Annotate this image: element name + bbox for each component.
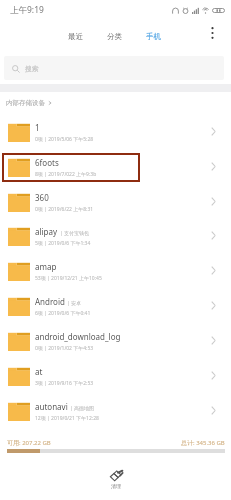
button[interactable]: More options: [203, 23, 222, 42]
staticText: alipay: [35, 226, 58, 237]
staticText: 最近: [68, 32, 83, 41]
staticText: autonavi: [35, 401, 68, 412]
staticText: 6foots: [35, 157, 59, 168]
staticText: at: [35, 366, 43, 377]
staticText: | 安卓: [67, 300, 82, 307]
staticText: 1: [35, 122, 40, 133]
staticText: 搜索: [25, 64, 39, 73]
button[interactable]: 最近: [68, 32, 83, 41]
button[interactable]: Android: [0, 288, 231, 323]
staticText: 手机: [146, 32, 161, 41]
button[interactable]: amap: [0, 253, 231, 288]
button[interactable]: alipay: [0, 218, 231, 253]
staticText: amap: [35, 261, 57, 272]
staticText: 分类: [107, 32, 122, 41]
button[interactable]: 清理: [96, 466, 136, 492]
staticText: 0项 | 2019/5/06 下午5:28: [35, 136, 94, 143]
staticText: | 支付宝钱包: [60, 230, 90, 237]
staticText: android_download_log: [35, 331, 121, 342]
staticText: Android: [35, 296, 65, 307]
button[interactable]: at: [0, 358, 231, 393]
staticText: 12项 | 2019/0/21 下午12:28: [35, 415, 99, 422]
button[interactable]: 分类: [107, 32, 122, 41]
staticText: 53项 | 2019/12/21 上午10:45: [35, 275, 102, 282]
staticText: | 高德地图: [70, 405, 95, 412]
staticText: 6项 | 2019/0/6 下午0:41: [35, 310, 91, 317]
button[interactable]: 1: [0, 114, 231, 149]
button[interactable]: android_download_log: [0, 323, 231, 358]
staticText: 3项 | 2019/9/16 下午2:53: [35, 380, 94, 387]
staticText: 上午9:19: [10, 4, 44, 16]
button[interactable]: autonavi: [0, 393, 231, 428]
staticText: 5项 | 2019/0/6 下午1:34: [35, 240, 91, 247]
staticText: 总计: 345.36 GB: [181, 439, 225, 447]
staticText: 0项 | 2019/1/02 下午4:53: [35, 345, 94, 352]
staticText: 8项 | 2019/7/022 上午9:3b: [35, 171, 97, 178]
staticText: 0项 | 2019/6/22 上午8:31: [35, 206, 94, 213]
staticText: 360: [35, 192, 49, 203]
staticText: 清理: [111, 483, 121, 489]
staticText: 内部存储设备: [6, 99, 45, 107]
button[interactable]: 手机: [146, 32, 161, 41]
button[interactable]: 6foots: [0, 149, 231, 184]
button[interactable]: 内部存储设备: [6, 96, 53, 110]
button[interactable]: 搜索: [4, 56, 224, 80]
button[interactable]: 360: [0, 184, 231, 219]
staticText: 可用: 207.22 GB: [7, 439, 51, 447]
